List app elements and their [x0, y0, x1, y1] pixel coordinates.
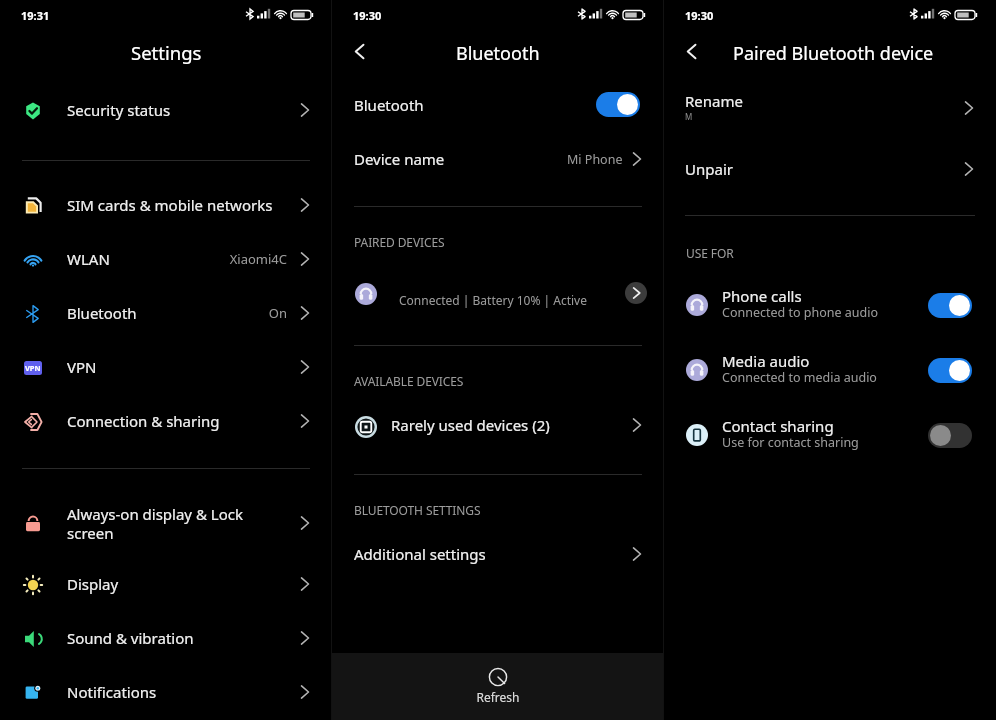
staticText: Paired Bluetooth device: [733, 41, 934, 66]
button[interactable]: Media audio toggle: [928, 358, 972, 383]
button[interactable]: Bluetooth: [332, 84, 664, 128]
button[interactable]: WLAN: [0, 237, 332, 285]
staticText: WLAN: [67, 249, 110, 269]
button[interactable]: Bluetooth toggle: [596, 92, 640, 117]
staticText: M: [685, 111, 693, 122]
button[interactable]: Device name: [332, 138, 664, 182]
button[interactable]: Rarely used devices: [332, 404, 664, 450]
button[interactable]: Media audio: [664, 348, 996, 400]
button[interactable]: Unpair: [664, 148, 996, 194]
staticText: Bluetooth: [456, 41, 540, 66]
staticText: Additional settings: [354, 544, 486, 564]
staticText: On: [180, 304, 287, 322]
button[interactable]: VPN: [0, 345, 332, 393]
staticText: Sound & vibration: [67, 628, 194, 648]
button[interactable]: Display: [0, 562, 332, 610]
staticText: 19:31: [21, 8, 50, 23]
button[interactable]: Security status: [0, 88, 332, 136]
staticText: Mi Phone: [567, 151, 623, 168]
button[interactable]: Notifications: [0, 670, 332, 718]
staticText: screen: [67, 523, 114, 543]
staticText: Connection & sharing: [67, 411, 220, 431]
button[interactable]: Rename: [664, 82, 996, 132]
staticText: Media audio: [722, 351, 810, 371]
staticText: VPN: [67, 357, 97, 377]
button[interactable]: Back: [341, 33, 377, 69]
button[interactable]: Contact sharing toggle: [928, 423, 972, 448]
button[interactable]: Sound and vibration: [0, 616, 332, 664]
staticText: Connected to media audio: [722, 369, 877, 386]
staticText: Display: [67, 574, 119, 594]
staticText: VPN: [25, 363, 41, 373]
staticText: Unpair: [685, 159, 733, 179]
button[interactable]: Additional settings: [332, 534, 664, 578]
staticText: Bluetooth: [354, 95, 424, 115]
staticText: Settings: [131, 40, 202, 65]
staticText: Connected to phone audio: [722, 304, 879, 321]
button[interactable]: Phone calls toggle: [928, 293, 972, 318]
button[interactable]: Bluetooth: [0, 291, 332, 339]
staticText: Notifications: [67, 682, 157, 702]
button[interactable]: Connected device: [332, 272, 664, 320]
staticText: USE FOR: [686, 245, 734, 261]
button[interactable]: Phone calls: [664, 283, 996, 335]
staticText: 19:30: [353, 8, 382, 23]
staticText: SIM cards & mobile networks: [67, 195, 273, 215]
staticText: Xiaomi4C: [180, 250, 287, 268]
staticText: Device name: [354, 149, 445, 169]
button[interactable]: Back: [673, 33, 709, 69]
staticText: PAIRED DEVICES: [354, 234, 445, 250]
button[interactable]: SIM cards: [0, 183, 332, 231]
staticText: Use for contact sharing: [722, 434, 859, 451]
button[interactable]: Always-on display and Lock screen: [0, 495, 332, 553]
staticText: Security status: [67, 100, 171, 120]
staticText: Bluetooth: [67, 303, 137, 323]
staticText: BLUETOOTH SETTINGS: [354, 502, 481, 518]
staticText: Phone calls: [722, 286, 802, 306]
staticText: Always-on display & Lock: [67, 504, 243, 524]
button[interactable]: Connection and sharing: [0, 399, 332, 447]
staticText: 19:30: [685, 8, 714, 23]
staticText: AVAILABLE DEVICES: [354, 373, 464, 389]
staticText: Contact sharing: [722, 416, 834, 436]
staticText: Rename: [685, 91, 743, 111]
button[interactable]: Refresh: [332, 653, 664, 720]
button[interactable]: Contact sharing: [664, 413, 996, 465]
staticText: Refresh: [332, 689, 664, 705]
staticText: Connected | Battery 10% | Active: [399, 292, 587, 308]
staticText: Rarely used devices (2): [391, 415, 550, 435]
